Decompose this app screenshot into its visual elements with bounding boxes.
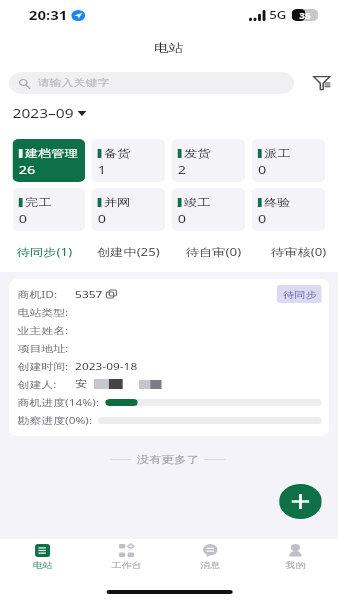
- staticText: 0: [178, 211, 187, 227]
- staticText: 0: [258, 211, 267, 227]
- staticText: 消息: [200, 560, 220, 570]
- staticText: 没有更多了: [136, 453, 199, 466]
- staticText: 1: [98, 162, 106, 178]
- staticText: 创建时间:: [17, 360, 69, 373]
- button[interactable]: 创建中(25): [86, 241, 170, 263]
- button[interactable]: 建档管理: [12, 139, 85, 182]
- staticText: 2023–09: [12, 105, 74, 122]
- button[interactable]: 电站: [0, 544, 84, 570]
- button[interactable]: 完工: [12, 188, 85, 231]
- staticText: 2: [178, 162, 187, 178]
- staticText: 5357: [75, 288, 103, 301]
- button[interactable]: 派工: [252, 139, 325, 182]
- staticText: 待审核(0): [270, 245, 327, 259]
- staticText: 业主姓名:: [17, 324, 69, 337]
- staticText: 商机ID:: [17, 288, 58, 301]
- staticText: 电站: [32, 560, 52, 570]
- staticText: 0: [19, 211, 28, 227]
- button[interactable]: 竣工: [171, 188, 245, 231]
- staticText: 请输入关键字: [38, 77, 110, 89]
- button[interactable]: 终验: [252, 188, 325, 231]
- staticText: 5G: [269, 8, 287, 22]
- button[interactable]: 我的: [253, 544, 338, 570]
- staticText: 电站: [154, 41, 184, 56]
- staticText: 竣工: [184, 196, 210, 209]
- staticText: 发货: [184, 147, 210, 160]
- staticText: 待同步: [283, 289, 317, 300]
- button[interactable]: 商机ID:: [9, 279, 329, 436]
- staticText: 工作台: [111, 560, 141, 570]
- button[interactable]: 发货: [171, 139, 245, 182]
- staticText: 并网: [104, 196, 130, 209]
- button[interactable]: 待同步(1): [2, 241, 86, 263]
- button[interactable]: 消息: [168, 544, 253, 570]
- staticText: 0: [258, 162, 267, 178]
- staticText: 终验: [264, 196, 290, 209]
- button[interactable]: Filter: [313, 72, 333, 94]
- staticText: 派工: [264, 147, 290, 160]
- button[interactable]: 待自审(0): [170, 241, 255, 263]
- staticText: 待同步(1): [16, 245, 73, 259]
- staticText: 完工: [25, 196, 51, 209]
- staticText: 35: [299, 10, 312, 21]
- staticText: 我的: [285, 560, 305, 570]
- staticText: 创建中(25): [96, 245, 160, 259]
- staticText: 项目地址:: [17, 342, 69, 355]
- button[interactable]: Add: [279, 484, 322, 519]
- staticText: 勘察进度(0%):: [17, 414, 93, 427]
- staticText: 26: [19, 162, 36, 178]
- staticText: 建档管理: [25, 147, 78, 160]
- staticText: 0: [98, 211, 106, 227]
- button[interactable]: 2023–09: [12, 105, 86, 122]
- button[interactable]: 请输入关键字: [9, 72, 294, 94]
- staticText: 待自审(0): [185, 245, 242, 259]
- staticText: 20:31: [29, 7, 68, 23]
- staticText: 电站类型:: [17, 306, 69, 319]
- staticText: 2023-09-18: [75, 360, 138, 373]
- staticText: 安: [75, 378, 88, 390]
- staticText: 备货: [104, 147, 130, 160]
- staticText: 商机进度(14%):: [17, 396, 100, 409]
- button[interactable]: 备货: [91, 139, 165, 182]
- button[interactable]: 工作台: [84, 544, 168, 570]
- staticText: 创建人:: [17, 378, 58, 391]
- button[interactable]: 待审核(0): [255, 241, 338, 263]
- button[interactable]: 并网: [91, 188, 165, 231]
